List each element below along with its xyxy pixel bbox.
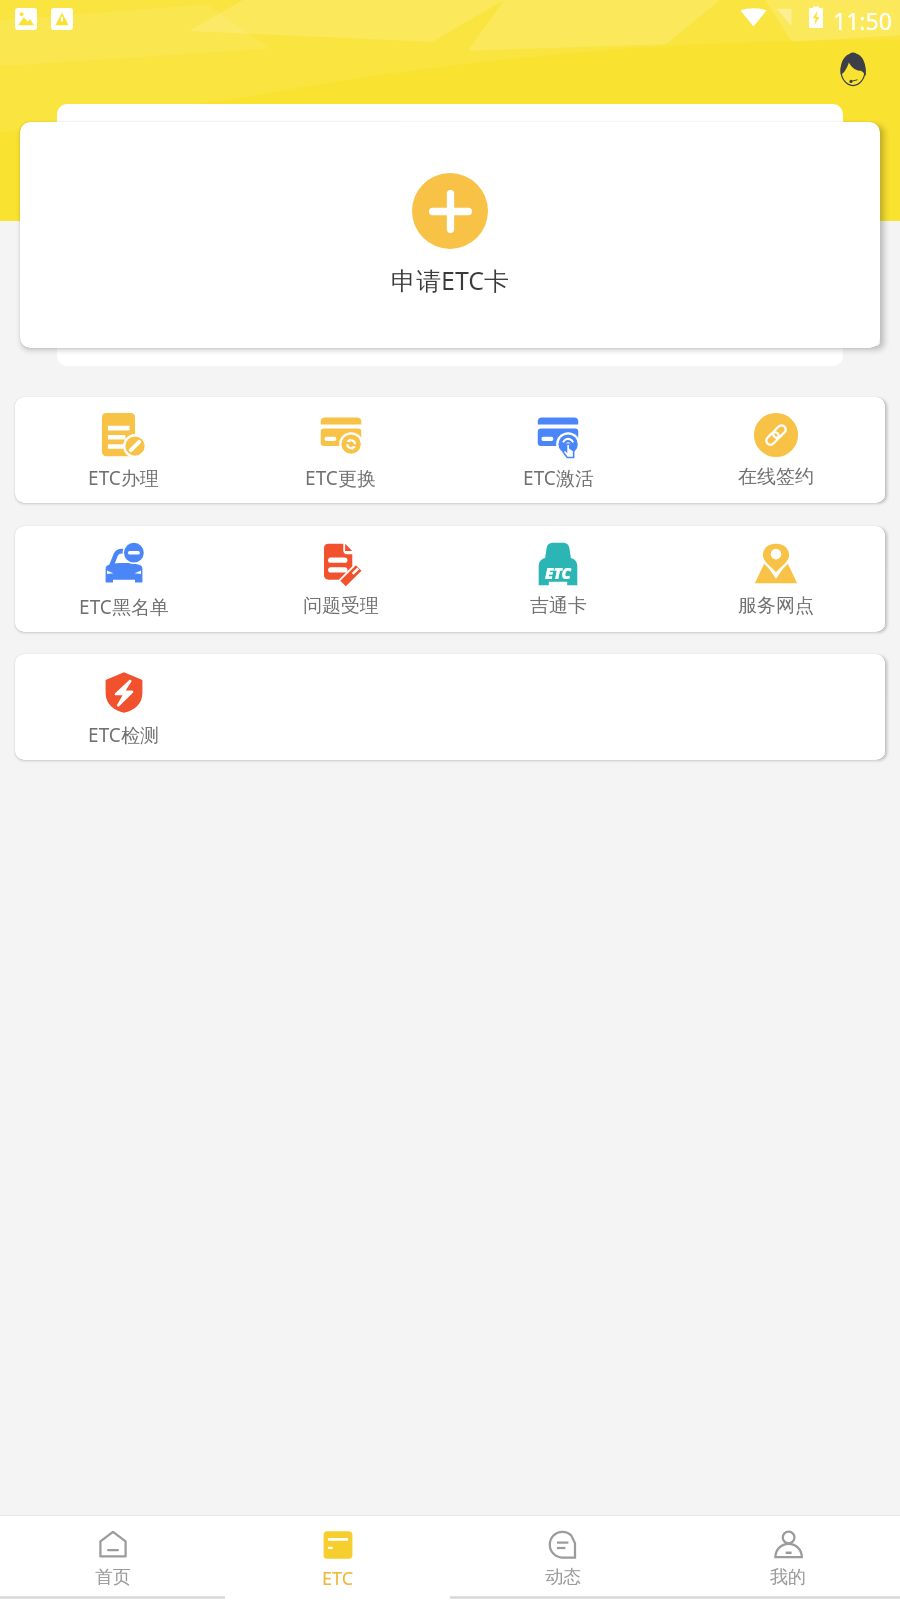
staticText: 首页 [95, 1566, 131, 1589]
button[interactable]: Customer service [831, 48, 875, 92]
staticText: ETC更换 [305, 465, 376, 491]
staticText: ETC [545, 563, 571, 583]
staticText: 动态 [545, 1566, 581, 1589]
staticText: 吉通卡 [530, 594, 587, 618]
button[interactable]: ETC黑名单 [15, 526, 232, 632]
staticText: ETC激活 [523, 465, 594, 491]
staticText: 在线签约 [738, 465, 814, 489]
button[interactable]: ETC办理 [15, 397, 232, 503]
staticText: ETC黑名单 [79, 594, 169, 620]
button[interactable]: 申请ETC卡 [20, 122, 880, 348]
staticText: 服务网点 [738, 594, 814, 618]
button[interactable]: 问题受理 [232, 526, 449, 632]
staticText: 我的 [770, 1566, 806, 1589]
button[interactable]: ETC [449, 526, 667, 632]
staticText: ETC办理 [88, 465, 159, 491]
staticText: 申请ETC卡 [391, 263, 510, 297]
button[interactable]: 首页 [0, 1516, 225, 1600]
button[interactable]: 动态 [450, 1516, 675, 1600]
button[interactable]: 在线签约 [667, 397, 885, 503]
button[interactable]: ETC [225, 1516, 450, 1600]
staticText: ETC [322, 1566, 354, 1591]
button[interactable]: ETC激活 [449, 397, 667, 503]
staticText: ETC检测 [88, 722, 159, 748]
staticText: 问题受理 [303, 594, 379, 618]
button[interactable]: ETC检测 [15, 654, 232, 760]
button[interactable]: 我的 [675, 1516, 900, 1600]
button[interactable]: 服务网点 [667, 526, 885, 632]
button[interactable]: ETC更换 [232, 397, 449, 503]
staticText: 11:50 [833, 5, 892, 36]
